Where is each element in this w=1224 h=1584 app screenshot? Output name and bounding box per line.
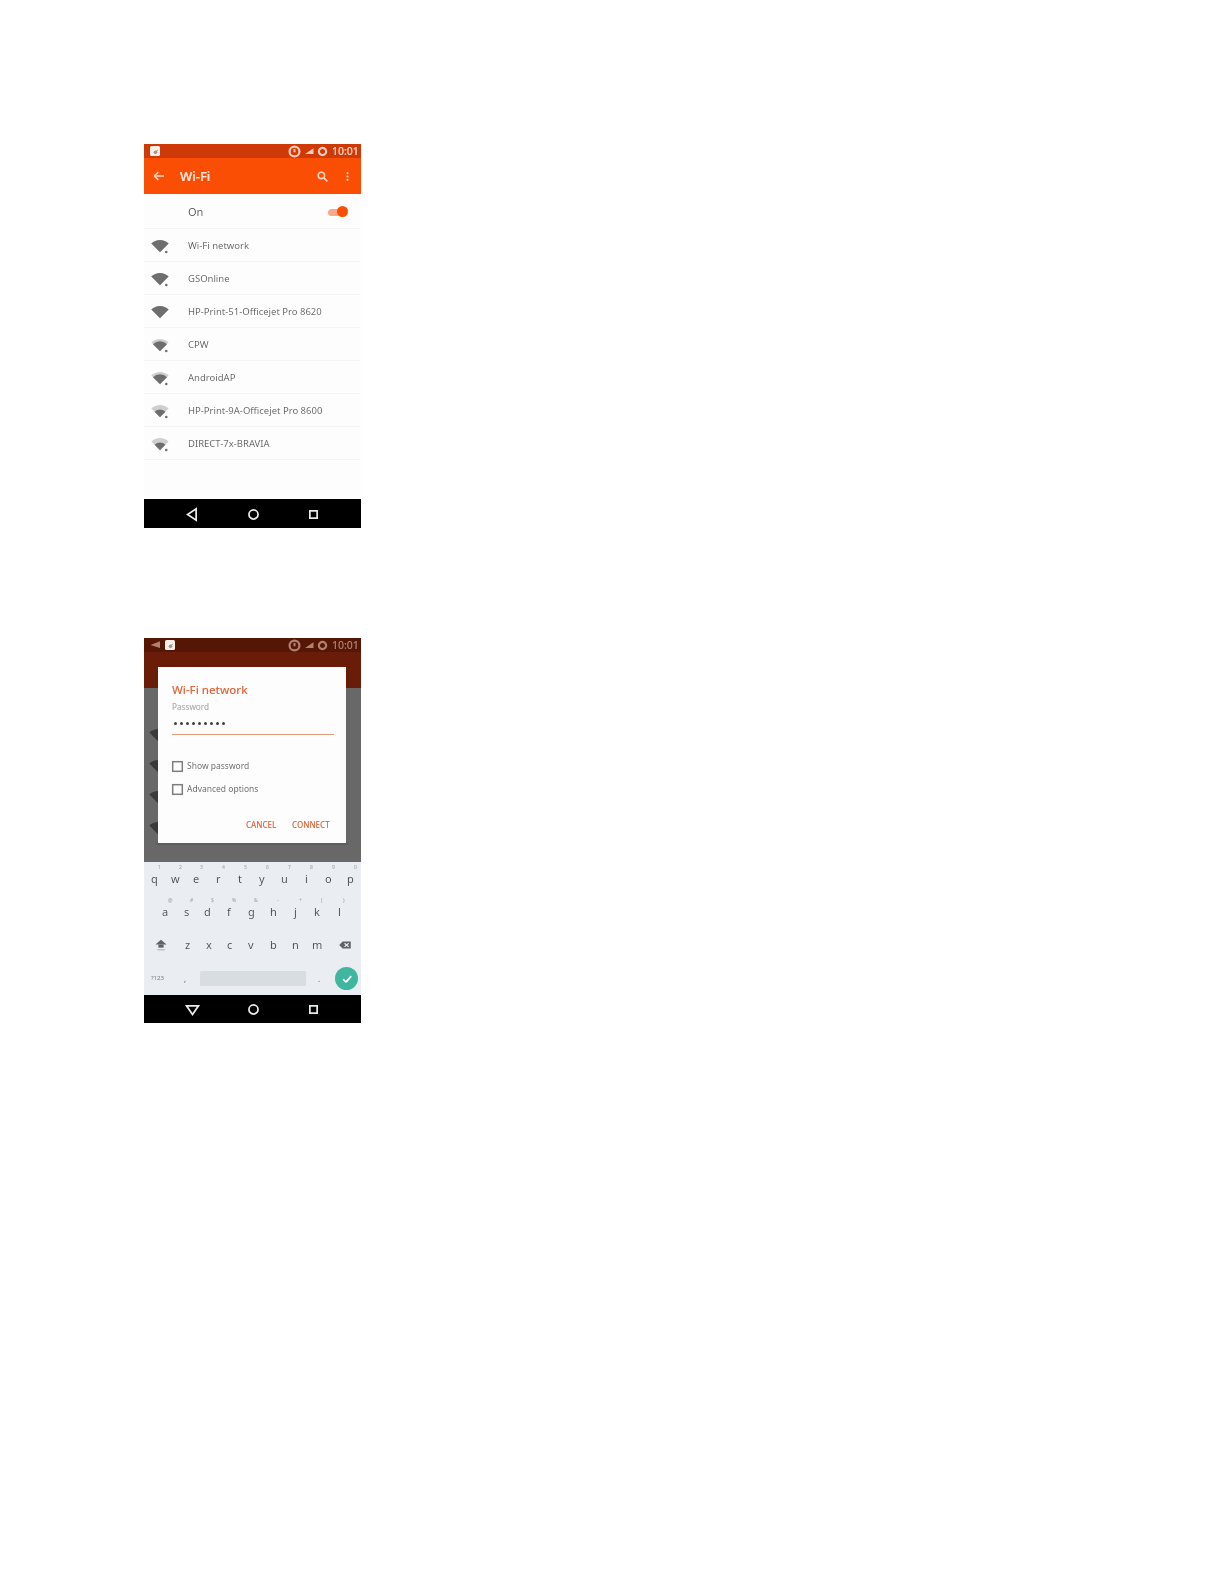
button[interactable]: m: [306, 928, 328, 961]
button[interactable]: @: [155, 895, 176, 928]
staticText: f: [227, 904, 231, 919]
staticText: (: [321, 897, 323, 904]
button[interactable]: More options: [335, 164, 359, 188]
staticText: ,: [184, 973, 187, 984]
button[interactable]: b: [262, 928, 284, 961]
button[interactable]: 8: [295, 862, 317, 895]
button[interactable]: (: [306, 895, 328, 928]
staticText: Wi-Fi network: [188, 239, 250, 252]
staticText: GSOnline: [188, 272, 230, 285]
staticText: d: [204, 904, 211, 919]
staticText: p: [347, 871, 354, 886]
staticText: $: [211, 897, 214, 904]
staticText: 9: [332, 864, 335, 871]
button[interactable]: #: [176, 895, 197, 928]
button[interactable]: GSOnline: [144, 262, 361, 294]
button[interactable]: On: [144, 194, 361, 228]
staticText: v: [248, 937, 254, 952]
button[interactable]: Delete: [328, 928, 361, 961]
button[interactable]: Home: [240, 996, 266, 1022]
staticText: y: [259, 871, 265, 886]
button[interactable]: +: [284, 895, 306, 928]
button[interactable]: c: [219, 928, 240, 961]
button[interactable]: CANCEL: [242, 815, 281, 834]
button[interactable]: n: [284, 928, 306, 961]
button[interactable]: Recents: [300, 501, 326, 527]
staticText: i: [305, 871, 308, 886]
button[interactable]: HP-Print-9A-Officejet Pro 8600: [144, 394, 361, 426]
staticText: 7: [288, 864, 291, 871]
button[interactable]: Home: [240, 501, 266, 527]
button[interactable]: CPW: [144, 328, 361, 360]
staticText: &: [254, 897, 258, 904]
staticText: r: [216, 871, 221, 886]
button[interactable]: Recents: [300, 996, 326, 1022]
staticText: 4: [222, 864, 225, 871]
staticText: #: [190, 897, 194, 904]
button[interactable]: x: [198, 928, 219, 961]
staticText: s: [184, 904, 190, 919]
staticText: 1: [158, 864, 161, 871]
staticText: w: [171, 871, 180, 886]
staticText: l: [338, 904, 341, 919]
staticText: q: [151, 871, 158, 886]
staticText: DIRECT-7x-BRAVIA: [188, 437, 270, 450]
staticText: 2: [179, 864, 182, 871]
button[interactable]: Back: [144, 161, 174, 191]
button[interactable]: DIRECT-7x-BRAVIA: [144, 427, 361, 459]
button[interactable]: z: [177, 928, 198, 961]
button[interactable]: 2: [165, 862, 186, 895]
button[interactable]: 6: [251, 862, 273, 895]
staticText: HP-Print-9A-Officejet Pro 8600: [188, 404, 323, 417]
button[interactable]: Shift: [144, 928, 177, 961]
button[interactable]: 5: [229, 862, 251, 895]
staticText: o: [325, 871, 332, 886]
staticText: b: [270, 937, 277, 952]
button[interactable]: ?123: [144, 961, 171, 995]
button[interactable]: %: [218, 895, 240, 928]
staticText: 10:01: [332, 638, 359, 652]
staticText: On: [188, 204, 204, 219]
button[interactable]: Enter: [335, 967, 358, 990]
button[interactable]: AndroidAP: [144, 361, 361, 393]
button[interactable]: 4: [207, 862, 229, 895]
button[interactable]: Show password: [172, 760, 250, 772]
button[interactable]: HP-Print-51-Officejet Pro 8620: [144, 295, 361, 327]
button[interactable]: 7: [273, 862, 295, 895]
button[interactable]: 1: [144, 862, 165, 895]
button[interactable]: -: [262, 895, 284, 928]
button[interactable]: Back: [179, 996, 205, 1022]
staticText: HP-Print-51-Officejet Pro 8620: [188, 305, 322, 318]
staticText: ?123: [151, 974, 164, 982]
staticText: m: [312, 937, 323, 952]
button[interactable]: &: [240, 895, 262, 928]
staticText: .: [318, 973, 321, 984]
button[interactable]: Advanced options: [172, 783, 259, 795]
staticText: k: [314, 904, 320, 919]
staticText: n: [292, 937, 299, 952]
staticText: AndroidAP: [188, 371, 236, 384]
staticText: c: [227, 937, 233, 952]
button[interactable]: 9: [317, 862, 339, 895]
staticText: CONNECT: [292, 819, 330, 830]
button[interactable]: 3: [186, 862, 207, 895]
staticText: 8: [310, 864, 313, 871]
button[interactable]: v: [240, 928, 262, 961]
staticText: 10:01: [332, 144, 359, 158]
button[interactable]: ): [328, 895, 350, 928]
button[interactable]: CONNECT: [288, 815, 334, 834]
button[interactable]: Back: [179, 501, 205, 527]
staticText: Wi-Fi network: [172, 682, 248, 698]
button[interactable]: 0: [339, 862, 361, 895]
staticText: Password: [172, 701, 210, 712]
button[interactable]: ,: [171, 961, 200, 995]
staticText: Show password: [187, 760, 250, 772]
button[interactable]: Search: [309, 163, 335, 189]
staticText: e: [193, 871, 200, 886]
staticText: 6: [266, 864, 269, 871]
staticText: 0: [354, 864, 357, 871]
button[interactable]: $: [197, 895, 218, 928]
button[interactable]: Wi-Fi network: [144, 229, 361, 261]
